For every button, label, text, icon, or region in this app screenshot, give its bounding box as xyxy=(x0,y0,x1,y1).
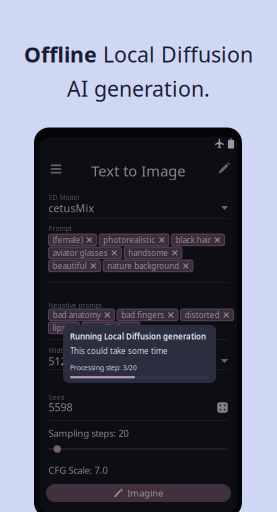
staticText: Running Local Diffusion generation xyxy=(70,331,206,342)
staticText: handsome xyxy=(128,248,168,258)
staticText: Processing step: 3/20 xyxy=(70,363,137,372)
staticText: Offline xyxy=(24,40,103,68)
staticText: This could take some time xyxy=(70,346,168,356)
staticText: distorted xyxy=(185,310,220,320)
staticText: SD Model xyxy=(48,193,79,202)
button[interactable]: aviator glasses xyxy=(48,247,121,259)
staticText: black hair xyxy=(176,235,211,245)
button[interactable]: lips xyxy=(48,322,79,334)
button[interactable]: Menu xyxy=(45,158,66,179)
staticText: AI generation. xyxy=(67,74,210,103)
button[interactable]: distorted xyxy=(180,309,233,321)
button[interactable]: bad fingers xyxy=(117,309,178,321)
staticText: 512 x 512 xyxy=(48,354,96,368)
staticText: lips xyxy=(53,323,66,333)
staticText: cetusMix xyxy=(48,201,94,215)
staticText: (female) xyxy=(53,235,83,245)
staticText: extra limbs xyxy=(86,323,126,333)
staticText: Negative prompt xyxy=(48,301,101,310)
button[interactable]: Imagine xyxy=(46,484,231,502)
staticText: CFG Scale: 7.0 xyxy=(48,464,107,476)
staticText: bad anatomy xyxy=(53,310,101,320)
staticText: Imagine xyxy=(127,487,163,499)
staticText: 5598 xyxy=(48,400,72,414)
staticText: beautiful xyxy=(53,261,87,271)
button[interactable]: Randomize seed xyxy=(217,402,228,413)
button[interactable]: black hair xyxy=(171,234,224,246)
staticText: bad fingers xyxy=(121,310,164,320)
staticText: nature background xyxy=(107,261,179,271)
staticText: Width x Height xyxy=(48,346,95,355)
button[interactable]: photorealistic xyxy=(99,234,169,246)
staticText: aviator glasses xyxy=(53,248,108,258)
staticText: Sampling steps: 20 xyxy=(48,427,128,439)
button[interactable]: beautiful xyxy=(48,260,100,272)
staticText: photorealistic xyxy=(103,235,155,245)
button[interactable]: bad anatomy xyxy=(48,309,114,321)
staticText: Prompt xyxy=(48,224,71,233)
button[interactable]: extra limbs xyxy=(82,322,140,334)
button[interactable]: handsome xyxy=(124,247,182,259)
button[interactable]: cetusMix xyxy=(48,201,228,215)
staticText: Local Diffusion xyxy=(103,40,253,68)
button[interactable]: nature background xyxy=(103,260,193,272)
staticText: Text to Image xyxy=(91,161,185,180)
button[interactable]: (female) xyxy=(48,234,96,246)
staticText: Seed xyxy=(48,393,64,402)
button[interactable]: Edit xyxy=(213,157,235,178)
